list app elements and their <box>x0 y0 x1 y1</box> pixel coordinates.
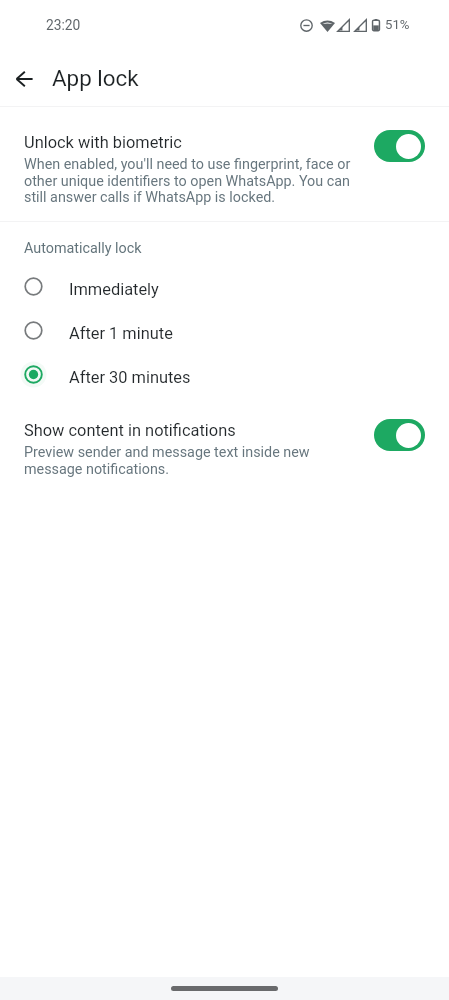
staticText: Unlock with biometric <box>24 133 182 152</box>
staticText: Immediately <box>69 280 159 299</box>
staticText: 51% <box>385 17 410 32</box>
staticText: 23:20 <box>46 17 81 33</box>
staticText: Show content in notifications <box>24 421 236 440</box>
button[interactable]: Immediately <box>0 264 449 308</box>
button[interactable]: Back <box>8 62 41 95</box>
staticText: When enabled, you'll need to use fingerp… <box>24 156 390 205</box>
staticText: Automatically lock <box>24 240 142 257</box>
staticText: Preview sender and message text inside n… <box>24 444 390 477</box>
button[interactable]: Show content in notifications <box>374 419 425 451</box>
staticText: App lock <box>52 65 139 91</box>
button[interactable]: Unlock with biometric <box>374 130 425 162</box>
staticText: After 1 minute <box>69 324 173 343</box>
staticText: After 30 minutes <box>69 368 191 387</box>
button[interactable]: Show content in notifications <box>0 408 449 490</box>
button[interactable]: After 30 minutes <box>0 352 449 396</box>
button[interactable]: Unlock with biometric <box>0 107 449 218</box>
button[interactable]: After 1 minute <box>0 308 449 352</box>
